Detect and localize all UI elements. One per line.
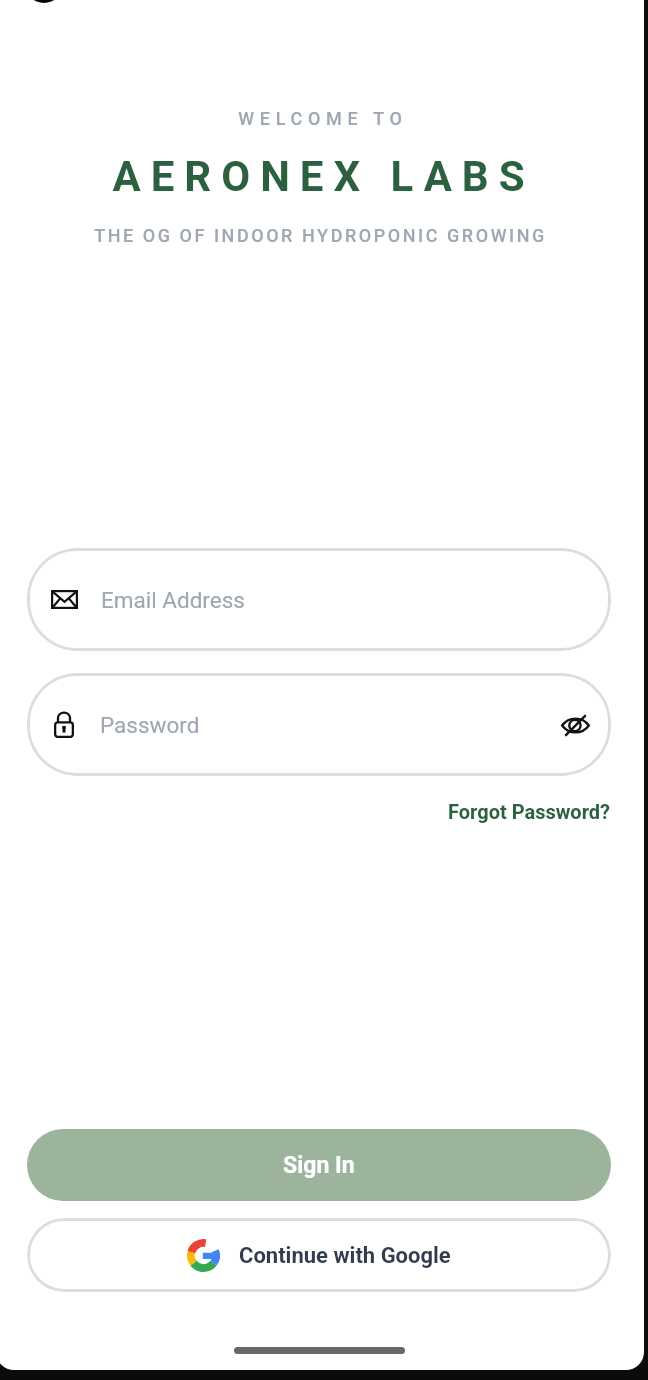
staticText: Continue with Google xyxy=(239,1243,451,1269)
button[interactable]: Continue with Google xyxy=(27,1218,611,1292)
staticText: Forgot Password? xyxy=(448,800,611,823)
button[interactable]: Email Address xyxy=(27,548,611,651)
button[interactable]: Password xyxy=(27,673,611,776)
staticText: Password xyxy=(100,712,200,738)
staticText: Sign In xyxy=(283,1152,355,1179)
button[interactable]: Forgot Password? xyxy=(448,800,611,823)
staticText: WELCOME TO xyxy=(238,108,408,129)
staticText: THE OG OF INDOOR HYDROPONIC GROWING xyxy=(94,225,547,246)
button[interactable]: Sign In xyxy=(27,1129,611,1201)
staticText: Email Address xyxy=(101,587,245,613)
staticText: AERONEX LABS xyxy=(112,152,535,201)
button[interactable]: Show password xyxy=(549,699,601,751)
